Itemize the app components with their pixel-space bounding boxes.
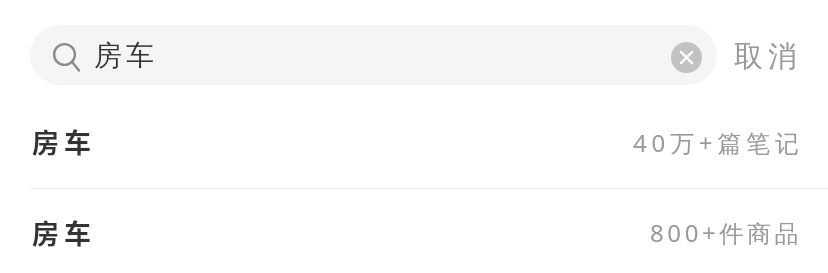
staticText: 取消 <box>734 38 803 75</box>
button[interactable]: 取消 <box>717 25 819 85</box>
staticText: 40万+篇笔记 <box>633 126 804 159</box>
staticText: 房车 <box>32 213 96 252</box>
button[interactable]: 房车 <box>0 97 828 188</box>
staticText: 房车 <box>32 122 96 161</box>
staticText: 房车 <box>94 38 158 73</box>
button[interactable]: Search <box>30 25 717 85</box>
other: Search <box>50 40 84 74</box>
button[interactable]: Clear search text <box>671 42 702 73</box>
button[interactable]: 房车 <box>0 189 828 273</box>
staticText: 800+件商品 <box>650 216 803 249</box>
